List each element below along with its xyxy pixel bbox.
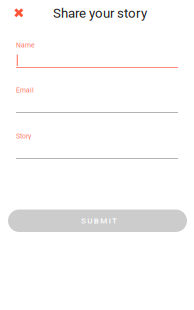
staticText: Email xyxy=(16,86,34,94)
button[interactable]: Email xyxy=(16,85,178,112)
button[interactable]: Close xyxy=(8,2,30,24)
staticText: SUBMIT xyxy=(81,216,117,225)
button[interactable]: Story xyxy=(16,131,178,158)
staticText: Story xyxy=(16,132,31,140)
staticText: Share your story xyxy=(53,5,147,21)
button[interactable]: Name xyxy=(16,40,178,67)
button[interactable]: SUBMIT xyxy=(8,209,187,232)
staticText: Name xyxy=(16,41,35,49)
